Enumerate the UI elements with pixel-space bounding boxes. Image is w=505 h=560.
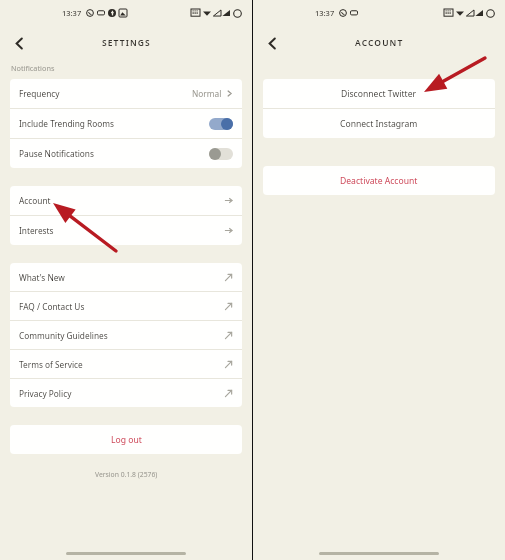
staticText: What's New	[19, 272, 65, 283]
button[interactable]: Terms of Service	[10, 350, 242, 378]
button[interactable]: Pause Notifications	[10, 139, 242, 168]
button[interactable]: Account	[10, 186, 242, 215]
staticText: Pause Notifications	[19, 148, 94, 159]
button[interactable]: Back	[6, 30, 32, 56]
button[interactable]: Log out	[10, 425, 242, 454]
staticText: Interests	[19, 225, 54, 236]
button[interactable]: Interests	[10, 216, 242, 245]
button[interactable]: Deactivate Account	[263, 166, 495, 195]
button[interactable]: Privacy Policy	[10, 379, 242, 407]
staticText: Include Trending Rooms	[19, 118, 114, 129]
staticText: Community Guidelines	[19, 330, 108, 341]
staticText: Disconnect Twitter	[341, 88, 417, 100]
button[interactable]: FAQ / Contact Us	[10, 292, 242, 320]
staticText: FAQ / Contact Us	[19, 301, 85, 312]
staticText: SETTINGS	[102, 37, 151, 49]
staticText: ACCOUNT	[355, 37, 404, 49]
button[interactable]: Include Trending Rooms	[10, 109, 242, 138]
staticText: Version 0.1.8 (2576)	[95, 470, 158, 479]
button[interactable]: Disconnect Twitter	[263, 79, 495, 108]
button[interactable]: Back	[259, 30, 285, 56]
staticText: Deactivate Account	[340, 175, 418, 187]
staticText: 13:37	[315, 8, 335, 18]
staticText: Frequency	[19, 88, 60, 99]
staticText: Account	[19, 195, 51, 206]
staticText: Connect Instagram	[340, 118, 418, 130]
staticText: 13:37	[62, 8, 82, 18]
button[interactable]: Connect Instagram	[263, 109, 495, 138]
staticText: Terms of Service	[19, 359, 83, 370]
button[interactable]: Community Guidelines	[10, 321, 242, 349]
staticText: Notifications	[11, 63, 55, 73]
button[interactable]: Frequency	[10, 79, 242, 108]
staticText: Privacy Policy	[19, 388, 72, 399]
staticText: Normal	[192, 88, 222, 99]
button[interactable]: What's New	[10, 263, 242, 291]
staticText: Log out	[111, 434, 142, 446]
